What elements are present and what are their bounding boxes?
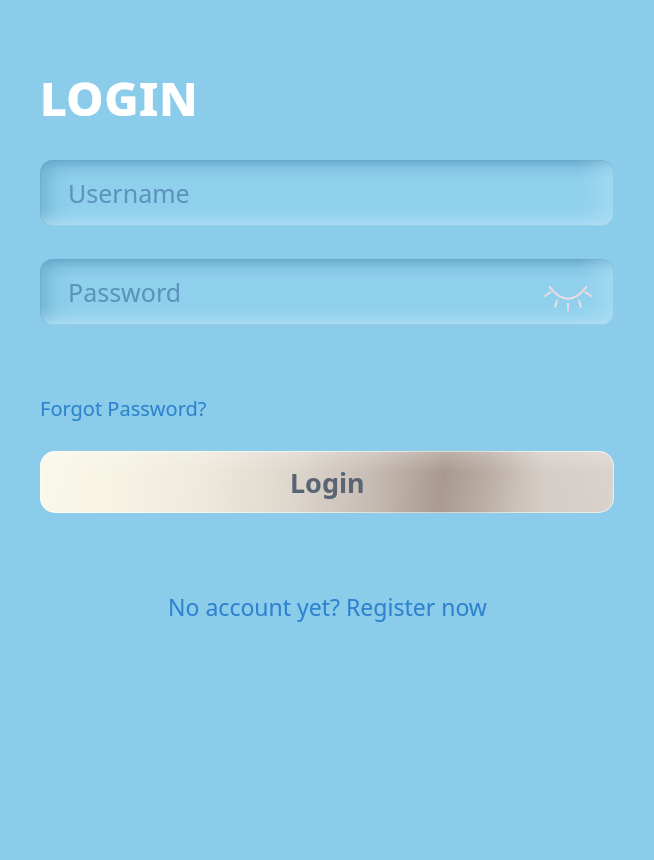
button[interactable]: Username	[40, 160, 614, 226]
staticText: LOGIN	[40, 66, 199, 130]
staticText: Forgot Password?	[40, 395, 207, 422]
button[interactable]: Password	[40, 259, 614, 325]
button[interactable]: Forgot Password?	[40, 395, 207, 422]
button[interactable]: Show password	[546, 270, 590, 314]
staticText: No account yet? Register now	[168, 591, 487, 622]
staticText: Login	[290, 464, 365, 501]
staticText: Username	[68, 176, 190, 210]
button[interactable]: No account yet? Register now	[40, 591, 614, 622]
staticText: Password	[68, 275, 182, 309]
button[interactable]: Login	[40, 451, 614, 513]
